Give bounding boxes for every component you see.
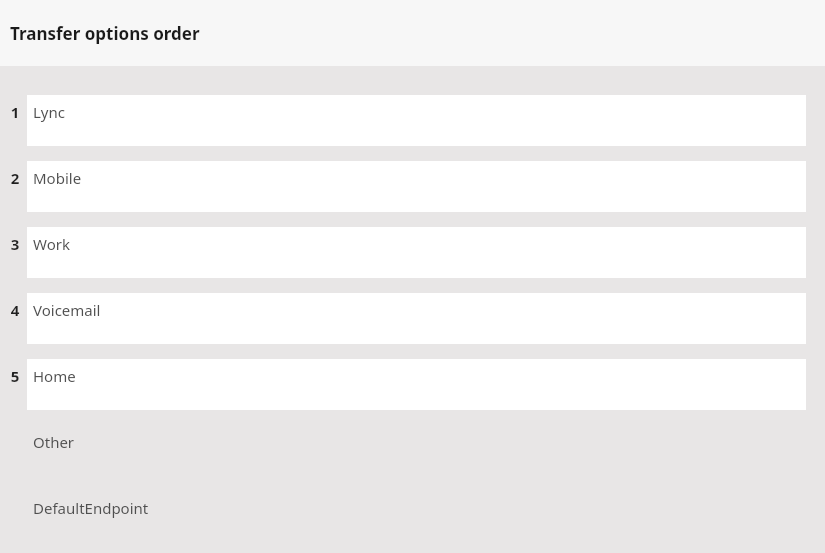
staticText: Mobile xyxy=(33,168,82,188)
staticText: 3 xyxy=(8,234,22,254)
button[interactable]: Work xyxy=(27,227,806,278)
staticText: Work xyxy=(33,234,70,254)
staticText: Lync xyxy=(33,102,65,122)
staticText: 4 xyxy=(8,300,22,320)
button[interactable]: Mobile xyxy=(27,161,806,212)
button[interactable]: Lync xyxy=(27,95,806,146)
staticText: Transfer options order xyxy=(10,22,200,45)
staticText: DefaultEndpoint xyxy=(33,498,149,518)
staticText: 2 xyxy=(8,168,22,188)
staticText: 1 xyxy=(8,102,22,122)
button[interactable]: Voicemail xyxy=(27,293,806,344)
button[interactable]: Other xyxy=(27,425,806,476)
button[interactable]: Home xyxy=(27,359,806,410)
staticText: Other xyxy=(33,432,75,452)
staticText: Home xyxy=(33,366,76,386)
button[interactable]: DefaultEndpoint xyxy=(27,491,806,542)
staticText: 5 xyxy=(8,366,22,386)
staticText: Voicemail xyxy=(33,300,101,320)
